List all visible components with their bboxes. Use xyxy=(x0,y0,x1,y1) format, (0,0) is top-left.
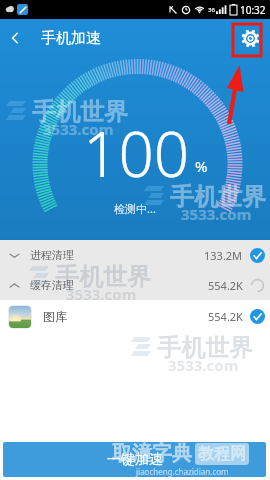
staticText: 3533.com xyxy=(168,355,239,375)
staticText: 133.2M xyxy=(204,248,243,263)
staticText: 进程清理 xyxy=(30,248,74,262)
button[interactable]: 进程清理 xyxy=(0,240,270,270)
button[interactable]: 一键加速 xyxy=(3,442,266,477)
staticText: 10:32 xyxy=(240,3,266,17)
staticText: 36 xyxy=(208,6,215,14)
staticText: jiaocheng.chazidian.com xyxy=(136,466,229,477)
staticText: 3533.com xyxy=(181,204,252,224)
button[interactable]: Settings xyxy=(230,19,270,57)
staticText: 100 xyxy=(83,111,190,195)
staticText: % xyxy=(195,156,208,176)
button[interactable]: 缓存清理 xyxy=(0,270,270,300)
staticText: 3533.com xyxy=(66,284,137,304)
staticText: 手机世界 xyxy=(32,97,128,127)
staticText: 554.2K xyxy=(208,309,243,324)
button[interactable]: 图库 xyxy=(0,300,270,333)
staticText: 教程网 xyxy=(198,444,246,464)
staticText: 图库 xyxy=(43,309,67,324)
staticText: 一键加速 xyxy=(107,451,163,469)
staticText: 检测中... xyxy=(114,201,156,216)
staticText: 手机世界 xyxy=(157,333,253,363)
staticText: 554.2K xyxy=(208,278,243,293)
staticText: 取潼字典 xyxy=(112,441,192,466)
staticText: 手机世界 xyxy=(170,182,266,212)
staticText: 手机世界 xyxy=(55,262,151,292)
staticText: 手机加速 xyxy=(41,29,101,48)
staticText: 3533.com xyxy=(43,119,114,139)
staticText: 缓存清理 xyxy=(30,278,74,292)
button[interactable]: Back xyxy=(0,19,30,57)
